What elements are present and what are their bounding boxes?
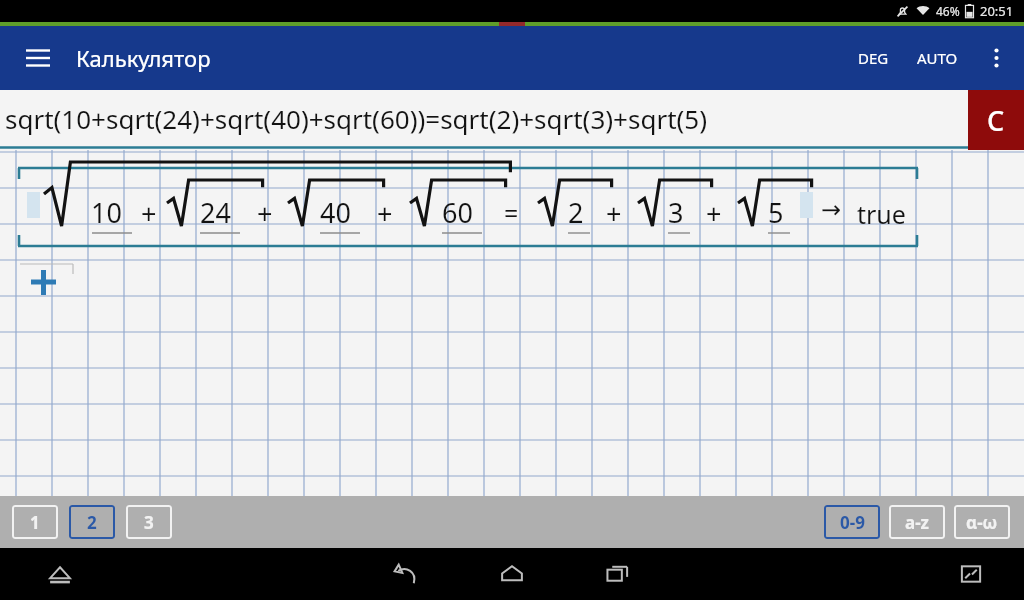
staticText: sqrt(10+sqrt(24)+sqrt(40)+sqrt(60))=sqrt… bbox=[5, 101, 708, 136]
staticText: + bbox=[257, 195, 273, 232]
staticText: 2 bbox=[87, 511, 97, 534]
button[interactable]: Minimize window bbox=[950, 553, 992, 595]
button[interactable]: 1 bbox=[12, 505, 58, 539]
button[interactable]: 3 bbox=[126, 505, 172, 539]
staticText: Калькулятор bbox=[76, 43, 211, 73]
staticText: 3 bbox=[668, 194, 684, 231]
staticText: 1 bbox=[30, 511, 40, 534]
staticText: α-ω bbox=[966, 511, 998, 534]
staticText: a-z bbox=[905, 511, 930, 534]
staticText: 2 bbox=[568, 194, 584, 231]
staticText: 40 bbox=[320, 194, 351, 231]
staticText: DEG bbox=[858, 48, 889, 68]
staticText: → bbox=[821, 196, 842, 224]
button[interactable]: Home bbox=[484, 548, 540, 600]
staticText: C bbox=[987, 102, 1005, 139]
staticText: 20:51 bbox=[980, 2, 1014, 20]
button[interactable]: Show keyboard bbox=[38, 552, 82, 596]
staticText: 24 bbox=[200, 194, 231, 231]
button[interactable]: DEG bbox=[848, 34, 899, 82]
staticText: true bbox=[857, 197, 906, 231]
button[interactable]: AUTO bbox=[907, 34, 968, 82]
button[interactable]: 0-9 bbox=[824, 505, 880, 539]
button[interactable]: Recent apps bbox=[590, 548, 646, 600]
staticText: 5 bbox=[768, 194, 784, 231]
button[interactable]: sqrt(10+sqrt(24)+sqrt(40)+sqrt(60))=sqrt… bbox=[0, 90, 968, 150]
button[interactable]: Open navigation menu bbox=[18, 38, 58, 78]
button[interactable]: α-ω bbox=[954, 505, 1010, 539]
staticText: 0-9 bbox=[840, 511, 865, 534]
staticText: = bbox=[504, 196, 519, 230]
staticText: + bbox=[141, 195, 157, 232]
button[interactable]: a-z bbox=[889, 505, 945, 539]
staticText: 10 bbox=[91, 194, 122, 231]
staticText: + bbox=[377, 195, 393, 232]
staticText: 46% bbox=[936, 3, 960, 19]
button[interactable]: 2 bbox=[69, 505, 115, 539]
staticText: 3 bbox=[144, 511, 154, 534]
button[interactable]: Back bbox=[378, 548, 434, 600]
button[interactable]: More options bbox=[974, 36, 1018, 80]
staticText: + bbox=[706, 195, 722, 232]
button[interactable]: C bbox=[968, 90, 1024, 150]
staticText: + bbox=[606, 195, 622, 232]
staticText: 60 bbox=[442, 194, 473, 231]
staticText: AUTO bbox=[917, 48, 958, 68]
